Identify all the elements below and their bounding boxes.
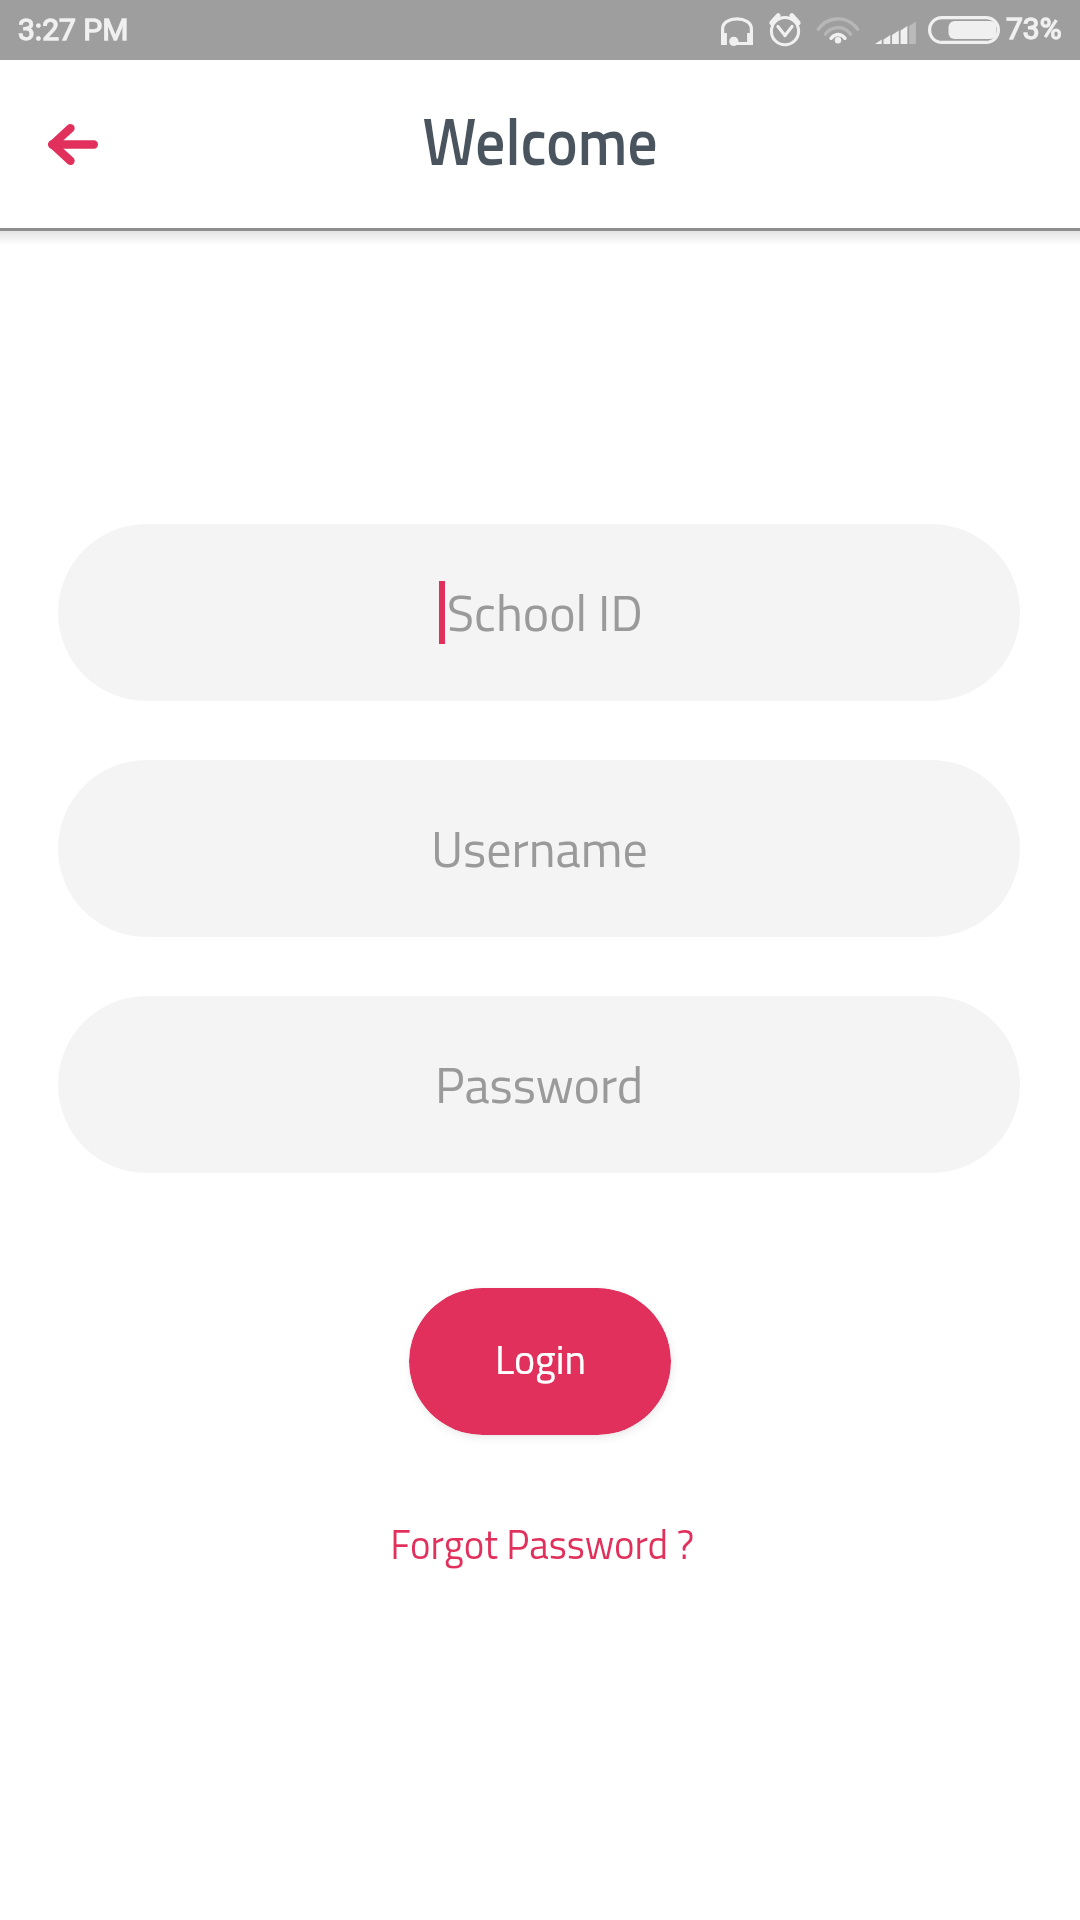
staticText: Password [435, 1046, 644, 1122]
button[interactable]: Password [58, 996, 1020, 1173]
staticText: 3:27 PM [18, 12, 129, 47]
staticText: School ID [447, 574, 643, 650]
staticText: Login [495, 1329, 586, 1390]
button[interactable]: School ID [58, 524, 1020, 701]
button[interactable]: Forgot Password ? [366, 1505, 719, 1583]
staticText: 73% [1006, 11, 1062, 46]
button[interactable]: Username [58, 760, 1020, 937]
button[interactable]: Login [409, 1288, 671, 1435]
button[interactable]: Back [29, 100, 117, 188]
staticText: Welcome [422, 89, 658, 191]
staticText: Username [431, 810, 648, 886]
